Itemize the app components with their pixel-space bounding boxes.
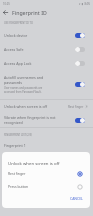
staticText: Access App Lock <box>4 61 32 66</box>
button[interactable]: Access Safe <box>4 42 85 56</box>
button[interactable]: On <box>75 82 85 87</box>
staticText: Fingerprint ID <box>12 9 47 16</box>
staticText: Rest finger <box>8 171 26 176</box>
button[interactable]: Autofill usernames and passwords <box>4 70 85 99</box>
button[interactable]: Fingerprint 1 <box>4 139 93 152</box>
staticText: CANCEL <box>70 196 83 201</box>
button[interactable]: On <box>75 33 85 38</box>
staticText: Rest finger <box>68 105 84 109</box>
button[interactable]: Press button <box>8 180 83 193</box>
staticText: Unlock device <box>4 33 28 38</box>
button[interactable]: Access App Lock <box>4 56 85 70</box>
staticText: Fingerprint 1 <box>4 143 26 148</box>
button[interactable]: Unlock when screen is off <box>4 100 88 113</box>
button[interactable]: Off <box>75 47 85 52</box>
staticText: ▾ ▮ 84% <box>79 2 90 6</box>
button[interactable]: Off <box>75 61 85 66</box>
button[interactable]: Unlock device <box>4 28 85 42</box>
button[interactable]: CANCEL <box>68 195 85 202</box>
staticText: Autofill usernames and passwords <box>4 75 44 85</box>
button[interactable]: Rest finger <box>8 167 83 180</box>
staticText: FINGERPRINT LIST (2/5) <box>4 133 32 136</box>
staticText: Access Safe <box>4 47 24 52</box>
staticText: USE FINGERPRINT ID TO <box>4 21 33 24</box>
staticText: Vibrate when fingerprint is not recogniz… <box>4 115 56 125</box>
staticText: 10:25 <box>3 2 10 6</box>
staticText: Press button <box>8 184 29 189</box>
button[interactable]: On <box>75 118 85 123</box>
button[interactable]: Back <box>0 7 11 18</box>
staticText: Unlock when screen is off <box>4 104 48 109</box>
button[interactable]: Vibrate when fingerprint is not recogniz… <box>4 113 85 127</box>
staticText: Unlock when screen is off <box>8 160 60 166</box>
staticText: User names and passwords are accessed fr… <box>4 86 43 94</box>
